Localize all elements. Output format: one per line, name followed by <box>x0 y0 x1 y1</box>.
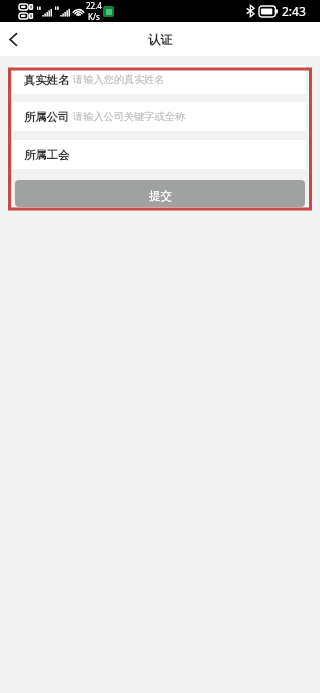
staticText: 请输入您的真实姓名 <box>73 73 165 86</box>
staticText: 所属工会 <box>24 148 70 162</box>
staticText: 22.4 <box>86 0 102 11</box>
button[interactable]: 提交 <box>15 180 305 207</box>
staticText: 提交 <box>149 189 172 203</box>
staticText: 所属公司 <box>24 110 70 124</box>
staticText: 认证 <box>148 32 173 47</box>
button[interactable]: 所属工会 <box>13 140 306 169</box>
staticText: 2:43 <box>282 3 306 19</box>
button[interactable]: 真实姓名 <box>13 65 306 94</box>
staticText: K/s <box>88 11 100 22</box>
button[interactable]: 所属公司 <box>13 102 306 131</box>
staticText: 真实姓名 <box>24 73 70 87</box>
button[interactable]: Back <box>0 23 26 56</box>
staticText: 请输入公司关键字或全称 <box>73 110 186 123</box>
